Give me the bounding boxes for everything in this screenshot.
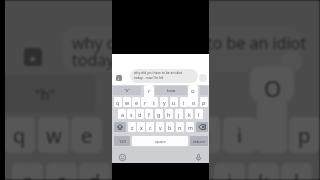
button[interactable]: f — [145, 109, 153, 119]
staticText: x — [140, 124, 143, 131]
staticText: O — [264, 73, 282, 103]
staticText: b — [168, 124, 172, 131]
staticText: s — [57, 168, 67, 180]
staticText: j — [178, 111, 180, 118]
staticText: return — [193, 139, 205, 144]
button[interactable]: m — [186, 122, 194, 132]
button[interactable]: x — [137, 122, 145, 132]
staticText: "h" — [35, 85, 55, 104]
staticText: "h" — [124, 88, 130, 94]
button[interactable]: Delete — [196, 122, 208, 132]
staticText: q — [13, 122, 26, 149]
staticText: s — [130, 111, 133, 118]
staticText: w — [125, 99, 130, 106]
staticText: r — [144, 99, 147, 106]
staticText: 123 — [119, 139, 126, 144]
staticText: why did you have to be an idiot — [72, 32, 307, 54]
staticText: t — [153, 99, 155, 106]
button[interactable]: c — [146, 122, 154, 132]
staticText: i — [183, 99, 185, 106]
button[interactable]: how — [155, 86, 187, 95]
staticText: j — [227, 168, 233, 180]
staticText: v — [159, 124, 162, 131]
staticText: a — [121, 111, 124, 118]
staticText: h — [167, 111, 171, 118]
staticText: q — [116, 99, 120, 106]
staticText: o — [191, 87, 195, 95]
button[interactable]: Apps — [24, 48, 42, 66]
button[interactable]: "h" — [113, 86, 141, 95]
staticText: k — [258, 168, 269, 180]
button[interactable]: i — [180, 97, 188, 107]
staticText: u — [198, 122, 211, 149]
button[interactable]: space — [132, 136, 188, 146]
button[interactable]: u — [170, 97, 178, 107]
staticText: n — [178, 124, 182, 131]
staticText: g — [157, 111, 161, 118]
button[interactable]: q — [114, 97, 122, 107]
button[interactable]: return — [190, 136, 208, 146]
button[interactable]: 123 — [114, 136, 130, 146]
staticText: d — [88, 168, 101, 180]
staticText: o — [192, 99, 196, 106]
button[interactable]: o — [190, 97, 198, 107]
button[interactable]: s — [127, 109, 135, 119]
button[interactable]: j — [175, 109, 183, 119]
staticText: l — [198, 111, 200, 118]
staticText: i — [237, 122, 243, 149]
staticText: l — [294, 168, 300, 180]
button[interactable]: a — [118, 109, 126, 119]
button[interactable]: k — [185, 109, 193, 119]
button[interactable]: Shift — [114, 122, 126, 132]
staticText: today. — [72, 49, 119, 71]
staticText: d — [138, 111, 142, 118]
button[interactable]: l — [195, 109, 203, 119]
staticText: c — [149, 124, 152, 131]
button[interactable]: d — [136, 109, 144, 119]
staticText: z — [131, 124, 134, 131]
staticText: u — [172, 99, 176, 106]
staticText: why did you have to be an idiot — [134, 70, 183, 74]
button[interactable]: y — [160, 97, 168, 107]
staticText: › — [118, 76, 120, 81]
staticText: how — [167, 88, 176, 94]
button[interactable]: w — [123, 97, 131, 107]
staticText: today... now I'm hd — [134, 75, 164, 79]
staticText: r — [148, 87, 151, 95]
button[interactable]: g — [155, 109, 163, 119]
staticText: y — [163, 99, 166, 106]
staticText: » — [30, 50, 36, 65]
button[interactable]: r — [141, 97, 149, 107]
button[interactable]: v — [156, 122, 164, 132]
staticText: p — [298, 122, 311, 149]
button[interactable]: p — [200, 97, 208, 107]
button[interactable]: Apps — [116, 75, 122, 81]
button[interactable]: t — [150, 97, 158, 107]
button[interactable]: n — [176, 122, 184, 132]
button[interactable]: z — [128, 122, 136, 132]
staticText: space — [155, 139, 166, 144]
staticText: e — [135, 99, 138, 106]
staticText: w — [46, 122, 62, 149]
button[interactable]: e — [132, 97, 140, 107]
button[interactable]: b — [166, 122, 174, 132]
button[interactable]: Send — [199, 74, 207, 82]
button[interactable]: h — [165, 109, 173, 119]
staticText: a — [22, 168, 34, 180]
staticText: m — [188, 124, 193, 131]
staticText: k — [188, 111, 191, 118]
staticText: e — [81, 122, 93, 149]
staticText: f — [148, 111, 150, 118]
staticText: p — [202, 99, 206, 106]
